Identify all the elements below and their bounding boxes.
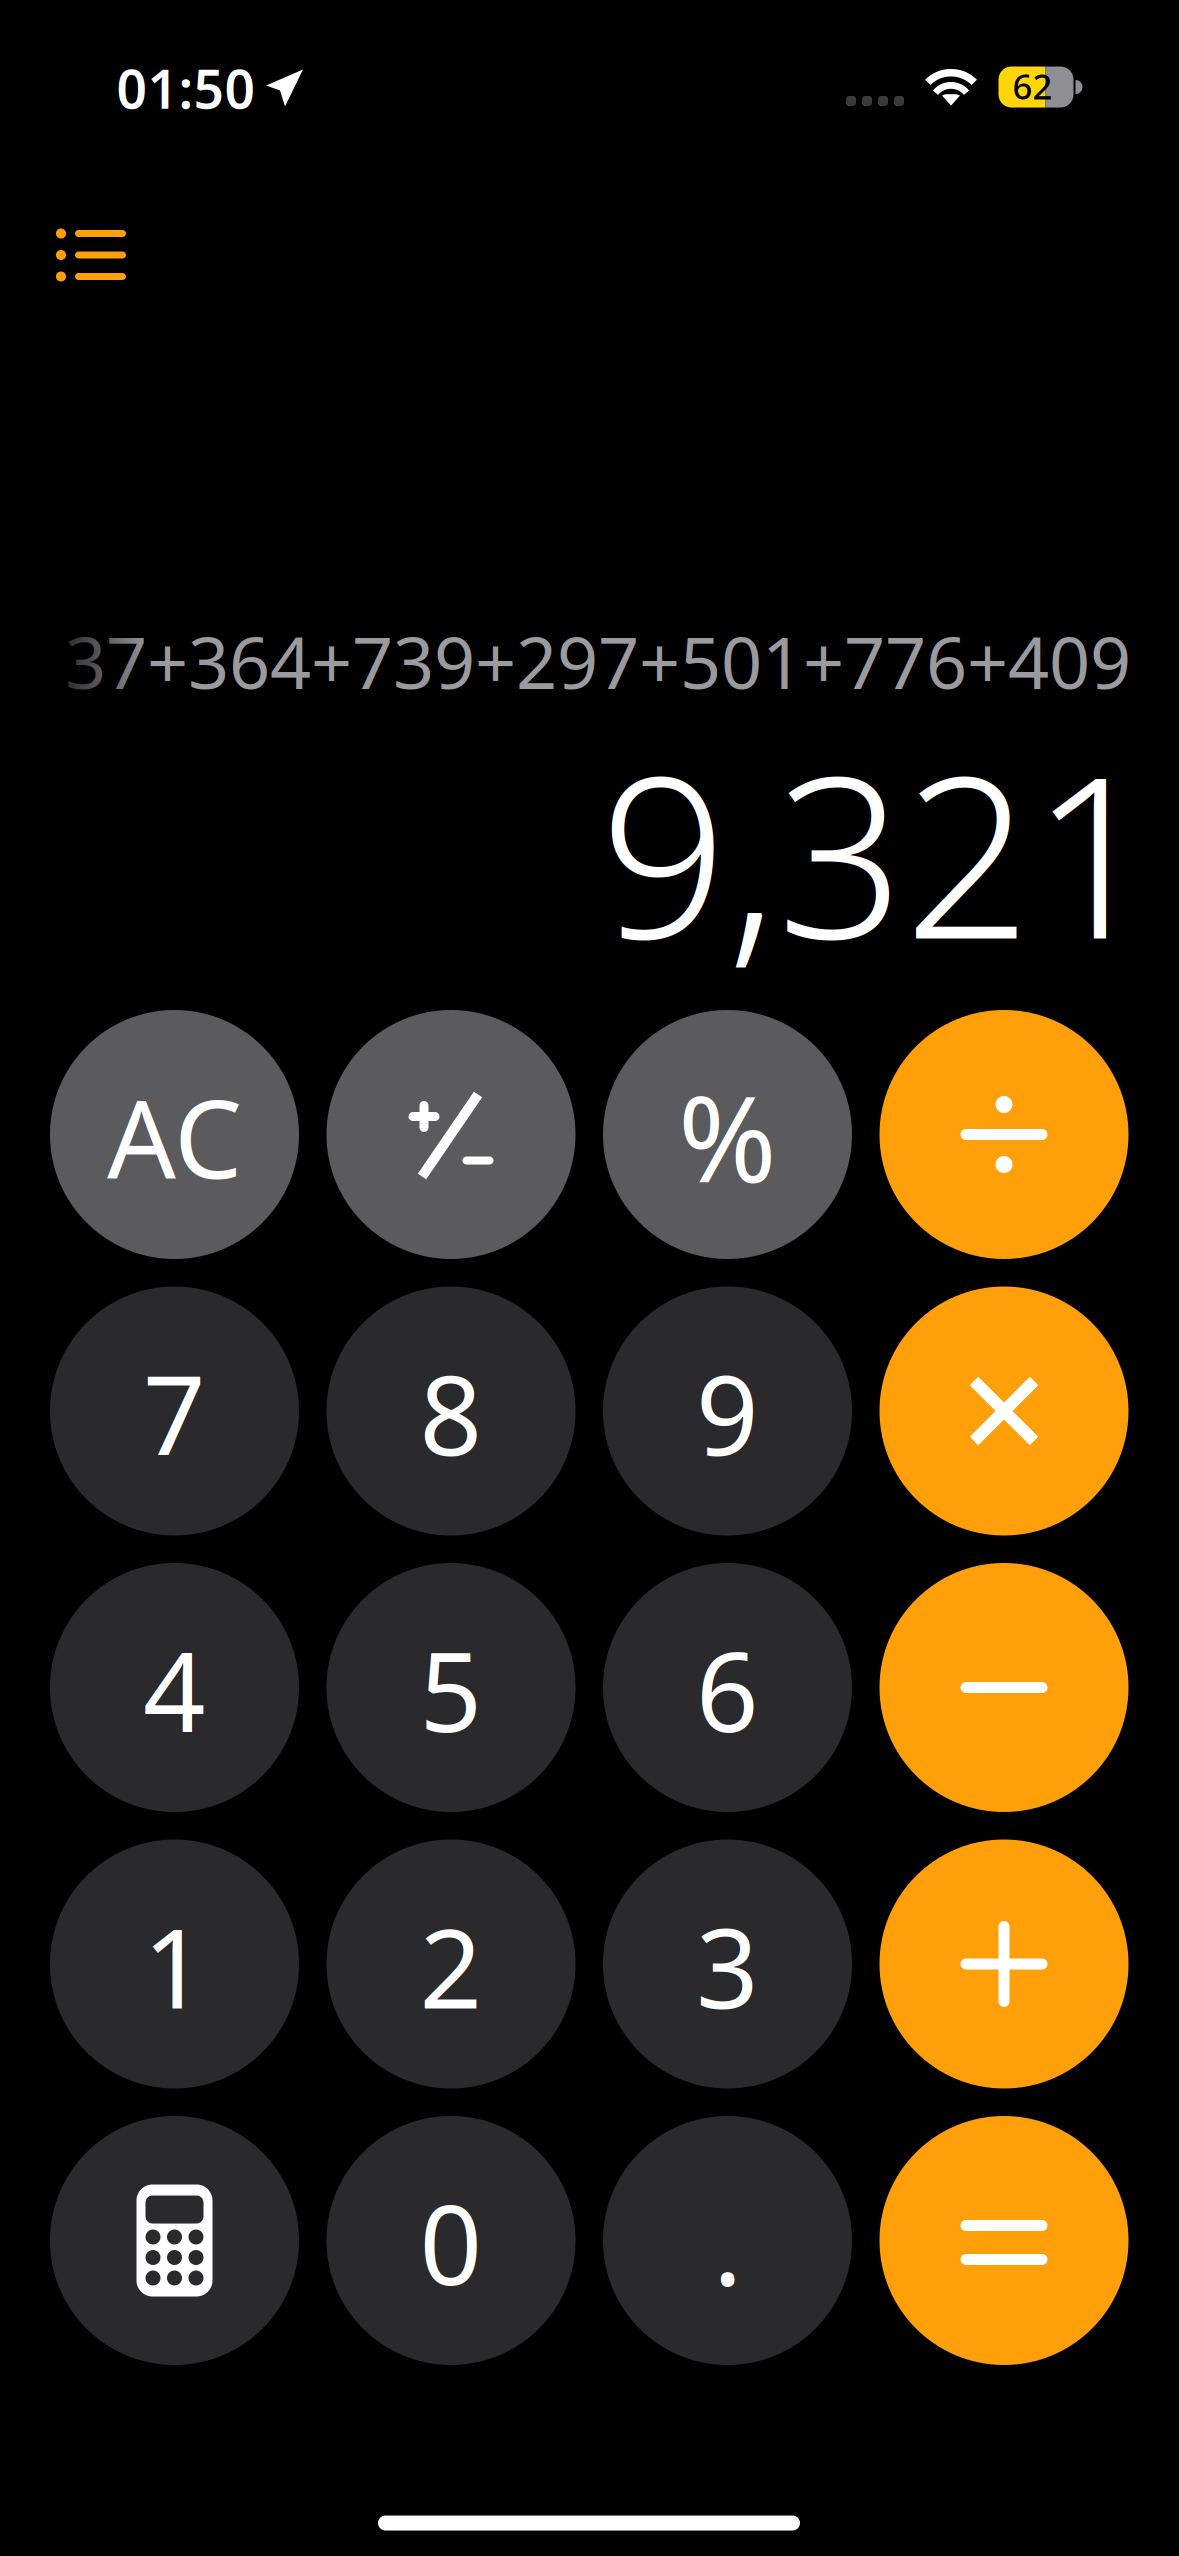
button[interactable]: 9 bbox=[603, 1286, 852, 1535]
button[interactable]: Divide bbox=[879, 1010, 1128, 1259]
button[interactable]: 0 bbox=[326, 2116, 575, 2365]
button[interactable]: 4 bbox=[50, 1563, 299, 1812]
button[interactable]: Add bbox=[879, 1839, 1128, 2088]
button[interactable]: 3 bbox=[603, 1839, 852, 2088]
staticText: 3 bbox=[696, 1893, 759, 2039]
button[interactable]: History bbox=[16, 195, 166, 315]
staticText: AC bbox=[107, 1065, 242, 1208]
staticText: 7 bbox=[143, 1340, 206, 1486]
button[interactable]: Calculator mode bbox=[50, 2116, 299, 2365]
staticText: 9,321 bbox=[600, 704, 1158, 1000]
button[interactable]: AC bbox=[50, 1010, 299, 1259]
staticText: 5 bbox=[419, 1617, 482, 1762]
staticText: 9 bbox=[696, 1340, 759, 1486]
staticText: 0 bbox=[419, 2170, 482, 2315]
staticText: 4 bbox=[143, 1617, 206, 1762]
button[interactable]: 7 bbox=[50, 1286, 299, 1535]
button[interactable]: Subtract bbox=[879, 1563, 1128, 1812]
staticText: 6 bbox=[696, 1617, 759, 1762]
button[interactable]: 6 bbox=[603, 1563, 852, 1812]
button[interactable]: 1 bbox=[50, 1839, 299, 2088]
button[interactable]: . bbox=[603, 2116, 852, 2365]
button[interactable]: % bbox=[603, 1010, 852, 1259]
staticText: 37+364+739+297+501+776+409 bbox=[65, 613, 1131, 709]
button[interactable]: Multiply bbox=[879, 1286, 1128, 1535]
button[interactable]: 8 bbox=[326, 1286, 575, 1535]
staticText: 8 bbox=[419, 1340, 482, 1486]
button[interactable]: 5 bbox=[326, 1563, 575, 1812]
button[interactable]: Equals bbox=[879, 2116, 1128, 2365]
staticText: . bbox=[713, 2170, 742, 2315]
staticText: % bbox=[678, 1058, 777, 1215]
staticText: 01:50 bbox=[116, 53, 255, 123]
button[interactable]: Plus minus bbox=[326, 1010, 575, 1259]
button[interactable]: 2 bbox=[326, 1839, 575, 2088]
staticText: 2 bbox=[419, 1893, 482, 2039]
staticText: 62 bbox=[1012, 63, 1052, 109]
staticText: 1 bbox=[143, 1893, 206, 2039]
